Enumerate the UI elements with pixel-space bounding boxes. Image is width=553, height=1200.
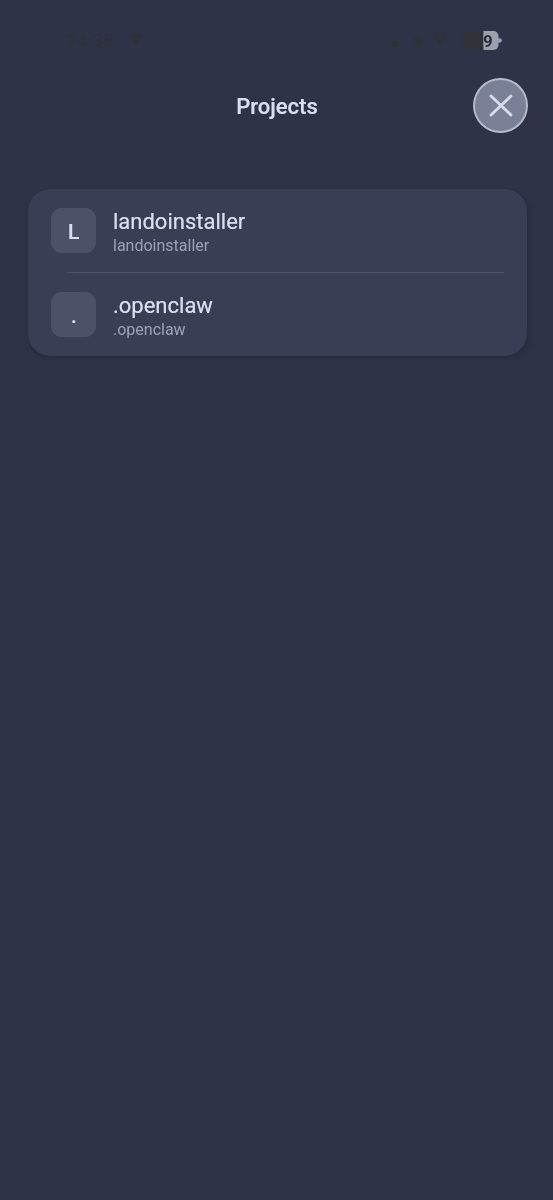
staticText: landoinstaller [113,209,246,235]
staticText: landoinstaller [113,236,210,255]
staticText: 14:38 [66,29,115,51]
button[interactable]: . [28,273,527,356]
button[interactable]: L [28,189,527,272]
staticText: .openclaw [113,293,213,319]
staticText: 9 [483,31,493,50]
staticText: L [68,220,80,245]
staticText: . [71,304,77,329]
button[interactable]: Close [473,78,528,133]
staticText: Projects [236,94,318,120]
staticText: .openclaw [113,320,186,339]
